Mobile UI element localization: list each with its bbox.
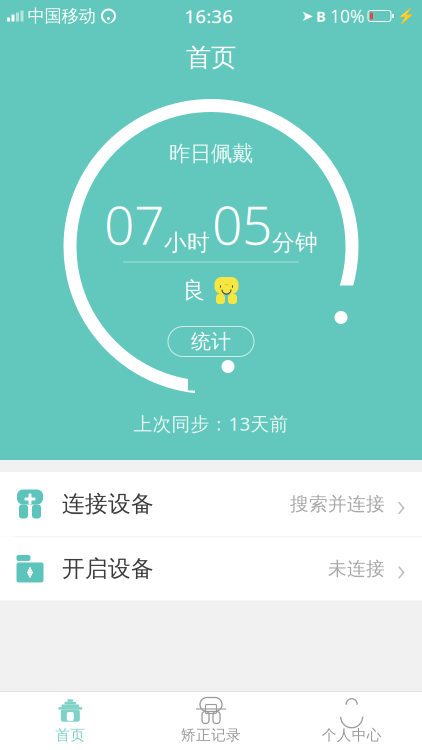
button[interactable]: 矫正记录 — [141, 692, 281, 750]
staticText: 矫正记录 — [181, 726, 241, 744]
staticText: 昨日佩戴 — [169, 140, 253, 167]
staticText: ➤ — [301, 8, 313, 24]
staticText: › — [397, 547, 405, 590]
staticText: 开启设备 — [62, 555, 154, 583]
staticText: 16:36 — [184, 4, 233, 28]
staticText: 未连接 — [328, 557, 385, 580]
staticText: 首页 — [55, 726, 85, 744]
button[interactable]: 首页 — [0, 692, 141, 750]
staticText: 连接设备 — [62, 490, 154, 518]
staticText: 分钟 — [272, 229, 318, 256]
staticText: 小时 — [164, 229, 210, 256]
staticText: 10% — [330, 4, 364, 27]
staticText: 个人中心 — [322, 726, 382, 744]
staticText: 07 — [104, 189, 164, 259]
staticText: 上次同步：13天前 — [133, 411, 288, 436]
button[interactable]: 连接设备 — [0, 472, 422, 537]
staticText: 统计 — [191, 329, 231, 354]
staticText: B — [316, 6, 326, 26]
staticText: 05 — [212, 189, 272, 259]
staticText: 搜索并连接 — [290, 492, 385, 515]
button[interactable]: 统计 — [168, 326, 254, 356]
staticText: 良 — [182, 277, 205, 304]
staticText: 首页 — [186, 42, 236, 73]
staticText: 中国移动 — [27, 5, 95, 27]
staticText: › — [397, 483, 405, 525]
staticText: ⚡ — [397, 8, 415, 24]
button[interactable]: 开启设备 — [0, 537, 422, 601]
button[interactable]: 个人中心 — [281, 692, 422, 750]
